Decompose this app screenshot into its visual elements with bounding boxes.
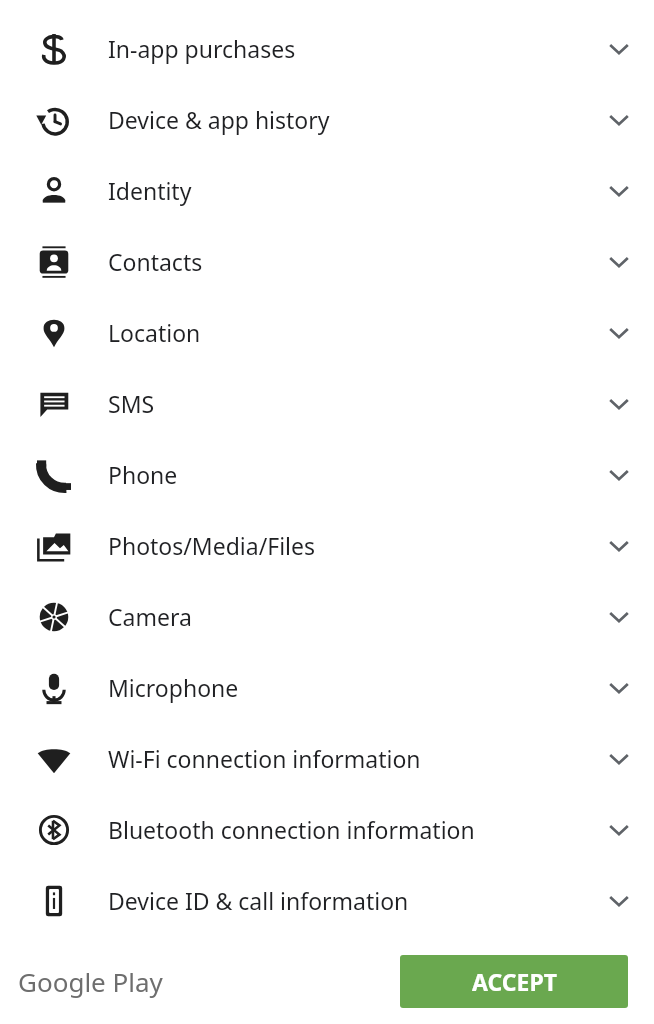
staticText: Device & app history [108, 104, 584, 135]
button[interactable]: SMS [0, 368, 654, 439]
staticText: Contacts [108, 246, 584, 277]
button[interactable]: Expand Camera [584, 581, 654, 652]
staticText: Camera [108, 601, 584, 632]
button[interactable]: Device ID & call information [0, 865, 654, 936]
button[interactable]: Expand Identity [584, 155, 654, 226]
staticText: ACCEPT [472, 966, 557, 997]
button[interactable]: Expand Microphone [584, 652, 654, 723]
button[interactable]: Expand SMS [584, 368, 654, 439]
staticText: Microphone [108, 672, 584, 703]
button[interactable]: Expand Photos/Media/Files [584, 510, 654, 581]
button[interactable]: Location [0, 297, 654, 368]
button[interactable]: Expand In-app purchases [584, 13, 654, 84]
staticText: Phone [108, 459, 584, 490]
button[interactable]: Microphone [0, 652, 654, 723]
button[interactable]: In-app purchases [0, 13, 654, 84]
staticText: Wi-Fi connection information [108, 743, 584, 774]
button[interactable]: Expand Contacts [584, 226, 654, 297]
button[interactable]: Identity [0, 155, 654, 226]
button[interactable]: Photos/Media/Files [0, 510, 654, 581]
staticText: Location [108, 317, 584, 348]
button[interactable]: Camera [0, 581, 654, 652]
staticText: Google Play [18, 964, 163, 999]
button[interactable]: Wi-Fi connection information [0, 723, 654, 794]
staticText: SMS [108, 388, 584, 419]
button[interactable]: Expand Device & app history [584, 84, 654, 155]
staticText: Photos/Media/Files [108, 530, 584, 561]
button[interactable]: Phone [0, 439, 654, 510]
button[interactable]: Expand Bluetooth connection information [584, 794, 654, 865]
button[interactable]: Expand Phone [584, 439, 654, 510]
button[interactable]: Device & app history [0, 84, 654, 155]
button[interactable]: Expand Location [584, 297, 654, 368]
staticText: Bluetooth connection information [108, 814, 584, 845]
button[interactable]: ACCEPT [400, 955, 628, 1008]
staticText: In-app purchases [108, 33, 584, 64]
button[interactable]: Expand Device ID & call information [584, 865, 654, 936]
button[interactable]: Bluetooth connection information [0, 794, 654, 865]
staticText: Device ID & call information [108, 885, 584, 916]
staticText: Identity [108, 175, 584, 206]
button[interactable]: Expand Wi-Fi connection information [584, 723, 654, 794]
button[interactable]: Contacts [0, 226, 654, 297]
